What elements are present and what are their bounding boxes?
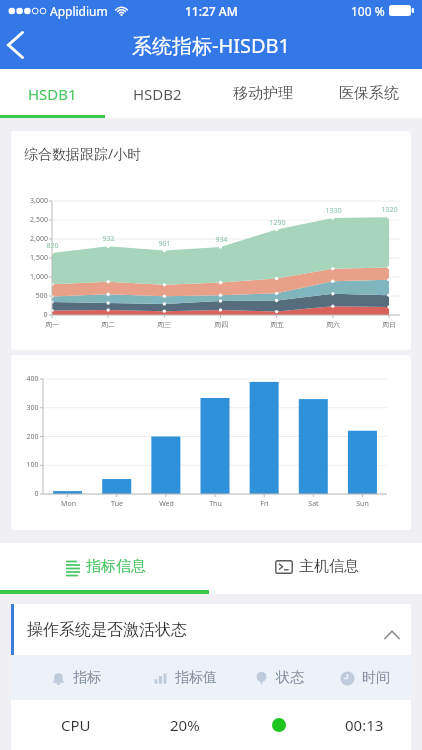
button[interactable]: 医保系统	[316, 69, 422, 118]
staticText: 医保系统	[339, 84, 399, 103]
staticText: 2,500	[30, 215, 48, 225]
staticText: 周六	[326, 320, 340, 329]
staticText: Fri	[260, 499, 269, 509]
staticText: 1,500	[30, 253, 48, 263]
staticText: 操作系统是否激活状态	[27, 620, 187, 640]
staticText: 时间	[362, 669, 390, 687]
button[interactable]: HSDB2	[105, 69, 210, 118]
staticText: 1330	[325, 206, 342, 216]
button[interactable]: 移动护理	[210, 69, 316, 118]
staticText: 20%	[170, 715, 200, 735]
staticText: 100	[26, 460, 39, 470]
staticText: Thu	[209, 499, 222, 509]
staticText: 指标值	[175, 669, 217, 687]
staticText: 400	[26, 374, 39, 384]
staticText: HSDB2	[133, 84, 182, 104]
button[interactable]: 主机信息	[211, 543, 422, 590]
staticText: 主机信息	[299, 557, 359, 576]
staticText: 周五	[270, 320, 284, 329]
staticText: 周三	[157, 320, 171, 329]
staticText: 周四	[214, 320, 228, 329]
staticText: 移动护理	[233, 84, 293, 103]
staticText: 周二	[101, 320, 115, 329]
staticText: CPU	[61, 715, 91, 735]
staticText: 11:27 AM	[185, 3, 238, 19]
staticText: 934	[215, 235, 228, 245]
button[interactable]: Back	[0, 21, 40, 69]
staticText: 周一	[45, 320, 59, 329]
staticText: 0	[34, 489, 39, 499]
staticText: Sat	[308, 499, 319, 509]
staticText: 2,000	[30, 234, 48, 244]
staticText: 932	[102, 234, 115, 244]
staticText: 指标	[73, 669, 101, 687]
staticText: 820	[46, 241, 59, 251]
staticText: 0	[43, 310, 48, 320]
button[interactable]: HSDB1	[0, 69, 105, 118]
staticText: 综合数据跟踪/小时	[24, 144, 142, 163]
staticText: 901	[158, 239, 171, 249]
staticText: Applidium	[50, 3, 108, 19]
button[interactable]: 指标信息	[0, 543, 211, 590]
staticText: Wed	[159, 499, 174, 509]
staticText: 00:13	[345, 715, 384, 735]
staticText: 1,000	[30, 272, 48, 282]
staticText: Mon	[61, 499, 76, 509]
staticText: 300	[26, 403, 39, 413]
staticText: 100 %	[351, 3, 385, 19]
staticText: Tue	[111, 499, 123, 509]
staticText: 3,000	[30, 196, 48, 206]
staticText: 500	[35, 291, 48, 301]
staticText: HSDB1	[28, 84, 77, 104]
button[interactable]: CPU	[11, 700, 411, 750]
other: Collapse	[384, 630, 400, 640]
staticText: 200	[26, 432, 39, 442]
staticText: Sun	[356, 499, 369, 509]
staticText: 1320	[381, 205, 398, 215]
staticText: 指标信息	[86, 557, 146, 576]
staticText: 系统指标-HISDB1	[132, 32, 291, 59]
staticText: 状态	[276, 669, 304, 687]
staticText: 1290	[269, 218, 286, 228]
button[interactable]: 操作系统是否激活状态	[11, 604, 411, 655]
staticText: 周日	[382, 320, 396, 329]
